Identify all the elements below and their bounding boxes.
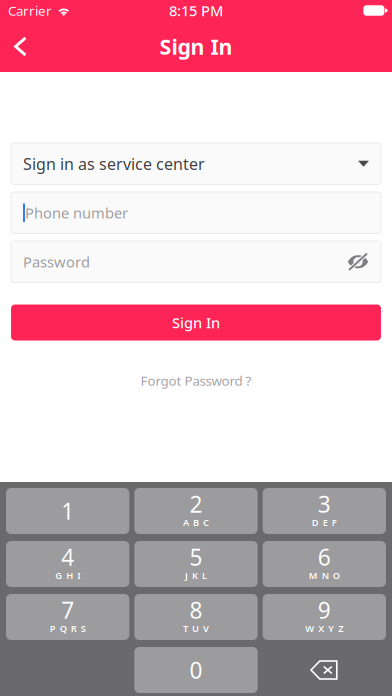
staticText: P Q R S: [50, 622, 86, 635]
button[interactable]: Back: [0, 24, 37, 68]
button[interactable]: Sign in as service center: [11, 143, 381, 184]
staticText: Sign In: [159, 32, 232, 61]
staticText: 4: [61, 542, 74, 572]
button[interactable]: 3: [263, 488, 386, 534]
button[interactable]: 1: [6, 488, 129, 534]
staticText: 3: [318, 489, 331, 519]
button[interactable]: Delete: [263, 647, 386, 693]
button[interactable]: Sign In: [11, 304, 381, 340]
button[interactable]: 9: [263, 594, 386, 640]
staticText: 2: [189, 489, 202, 519]
staticText: 6: [318, 542, 331, 572]
staticText: Carrier: [8, 2, 52, 19]
staticText: D E F: [312, 516, 337, 529]
staticText: Phone number: [25, 203, 128, 222]
button[interactable]: 8: [134, 594, 258, 640]
staticText: Password: [23, 252, 90, 271]
button[interactable]: Forgot Password ?: [11, 371, 381, 389]
staticText: A B C: [183, 516, 209, 529]
staticText: 8: [189, 595, 202, 625]
button[interactable]: 5: [134, 541, 258, 587]
staticText: J K L: [185, 569, 207, 582]
staticText: 5: [189, 542, 202, 572]
staticText: Sign In: [172, 313, 220, 332]
button[interactable]: 4: [6, 541, 129, 587]
staticText: M N O: [309, 569, 340, 582]
staticText: Sign in as service center: [23, 153, 205, 174]
staticText: Forgot Password ?: [140, 372, 251, 389]
staticText: 0: [189, 655, 202, 685]
button[interactable]: 7: [6, 594, 129, 640]
staticText: 8:15 PM: [169, 1, 223, 20]
button[interactable]: Show password: [347, 253, 369, 271]
staticText: G H I: [55, 569, 80, 582]
staticText: 7: [61, 595, 74, 625]
staticText: 1: [61, 496, 74, 526]
staticText: W X Y Z: [305, 622, 343, 635]
staticText: T U V: [183, 622, 209, 635]
button[interactable]: 6: [263, 541, 386, 587]
staticText: 9: [318, 595, 331, 625]
button[interactable]: 2: [134, 488, 258, 534]
button[interactable]: 0: [134, 647, 258, 693]
